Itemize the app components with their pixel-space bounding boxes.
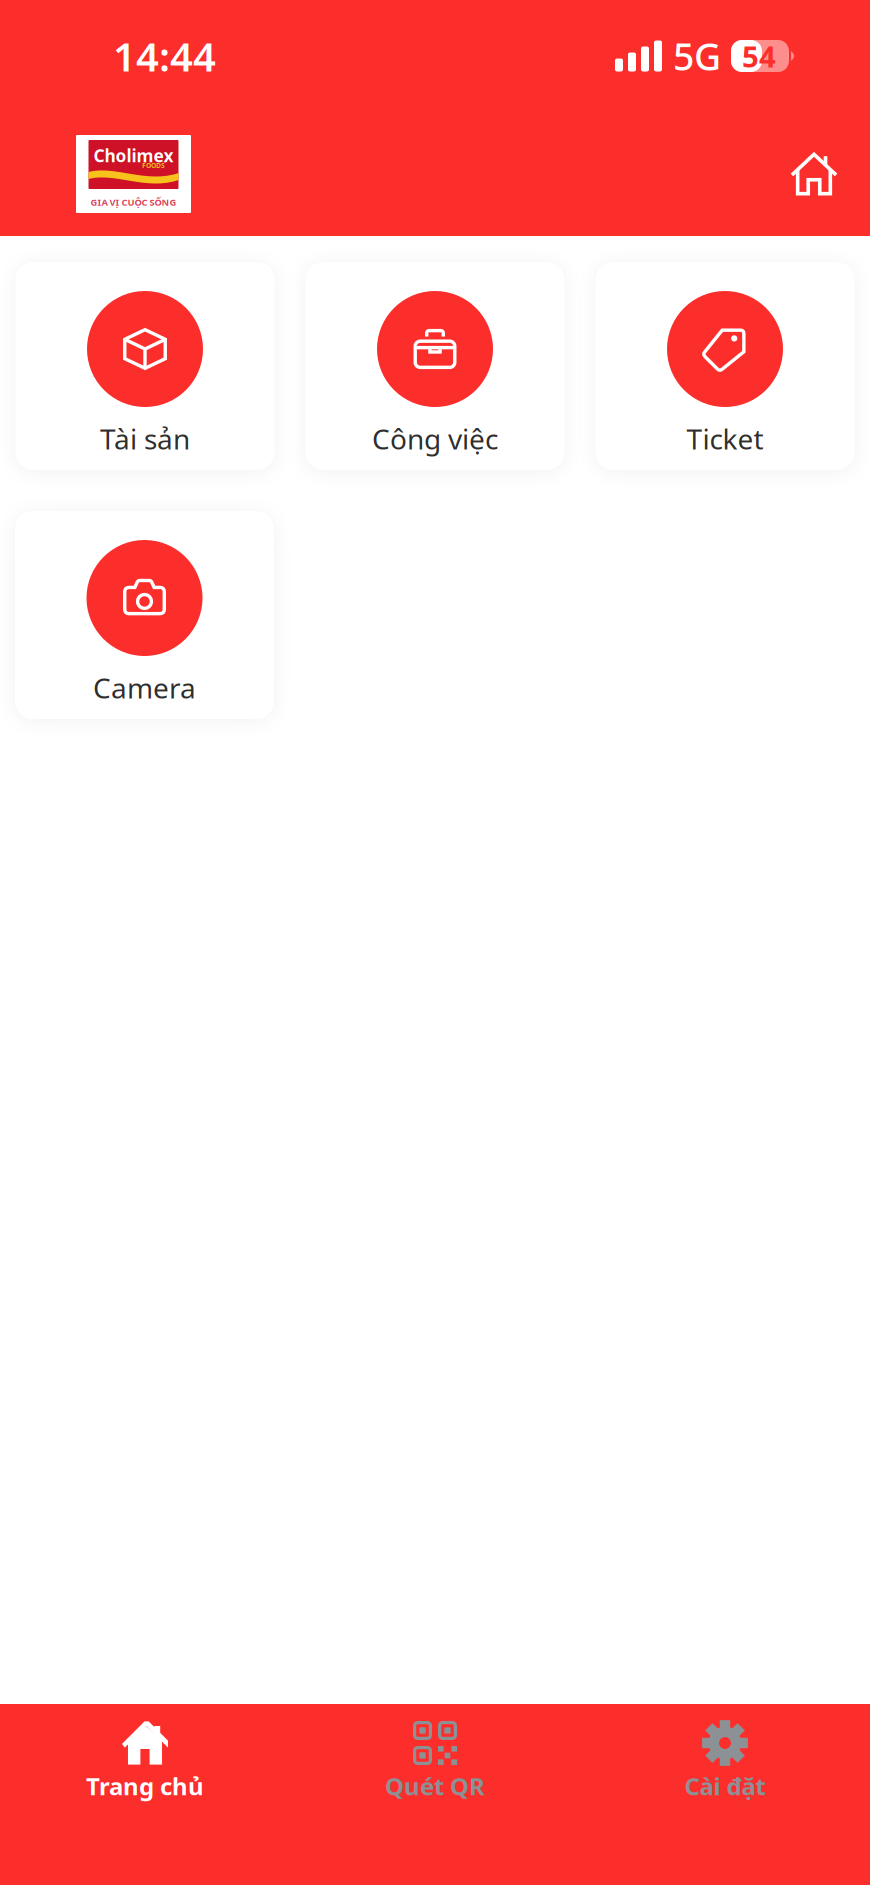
button[interactable]: Camera (15, 511, 274, 719)
staticText: GIA VỊ CUỘC SỐNG (90, 196, 176, 208)
button[interactable]: Ticket (595, 262, 854, 470)
button[interactable]: Trang chủ (0, 1704, 290, 1885)
staticText: 5G (673, 31, 721, 81)
staticText: Quét QR (385, 1770, 485, 1802)
staticText: Cholimex (93, 144, 173, 167)
staticText: 54 (742, 36, 776, 75)
staticText: Tài sản (100, 420, 190, 457)
button[interactable]: Cài đặt (580, 1704, 870, 1885)
staticText: Trang chủ (86, 1770, 204, 1802)
staticText: 14:44 (113, 29, 216, 82)
staticText: Ticket (686, 420, 763, 457)
button[interactable]: Quét QR (290, 1704, 580, 1885)
staticText: Camera (93, 669, 196, 706)
button[interactable]: Tài sản (15, 262, 274, 470)
staticText: Công việc (372, 420, 498, 457)
staticText: Cài đặt (684, 1770, 765, 1802)
button[interactable]: Công việc (305, 262, 564, 470)
staticText: FOODS (142, 161, 165, 170)
button[interactable]: Home (776, 136, 852, 212)
